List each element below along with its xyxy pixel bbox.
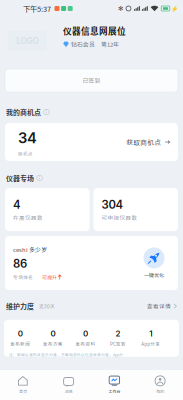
staticText: 可申报仪器数 bbox=[101, 213, 137, 221]
staticText: 2 bbox=[116, 329, 121, 338]
staticText: ceshi 多少岁 bbox=[13, 245, 47, 254]
staticText: 0 bbox=[50, 329, 55, 338]
staticText: 注：新闻以发布并显示为准，方案和资料以栏目收录为准，App分 bbox=[9, 352, 123, 357]
staticText: 专场排名 bbox=[13, 274, 33, 281]
staticText: 工作台 bbox=[108, 388, 120, 394]
staticText: 34 bbox=[18, 129, 37, 147]
staticText: 第12年 bbox=[101, 40, 119, 48]
staticText: App分享 bbox=[141, 340, 160, 347]
staticText: 发布资料 bbox=[75, 340, 95, 347]
button[interactable]: 获取商机点 bbox=[126, 137, 170, 147]
staticText: 1 bbox=[149, 329, 152, 338]
staticText: 我的 bbox=[156, 388, 164, 394]
staticText: 下午5:37 bbox=[23, 3, 51, 14]
staticText: 首页 bbox=[19, 388, 27, 394]
staticText: 0 bbox=[83, 329, 88, 338]
staticText: 维护力度 bbox=[6, 301, 34, 311]
staticText: 304 bbox=[101, 198, 123, 211]
button[interactable]: 我的 bbox=[137, 370, 183, 400]
button[interactable]: 工作台 bbox=[91, 370, 137, 400]
staticText: PC签到 bbox=[110, 340, 126, 347]
staticText: 一键优化 bbox=[144, 271, 164, 279]
staticText: 发布新闻 bbox=[10, 340, 30, 347]
staticText: 仪器专场 bbox=[6, 173, 34, 183]
staticText: 我的商机点 bbox=[6, 107, 41, 117]
staticText: 在展仪器数 bbox=[13, 213, 43, 221]
staticText: 0 bbox=[18, 329, 23, 338]
staticText: ✻ bbox=[118, 5, 123, 12]
staticText: 发布方案 bbox=[43, 340, 63, 347]
staticText: 4 bbox=[13, 198, 21, 211]
staticText: 仪器信息网展位 bbox=[63, 24, 126, 37]
staticText: 近30天 bbox=[39, 303, 55, 310]
staticText: 钻石会员 bbox=[71, 40, 95, 48]
staticText: 已签到 bbox=[82, 76, 100, 85]
button[interactable]: 消息 bbox=[46, 370, 92, 400]
staticText: 查看详情 bbox=[147, 302, 171, 310]
staticText: 获取商机点 bbox=[126, 137, 161, 147]
staticText: LOGO bbox=[16, 36, 38, 46]
staticText: 86 bbox=[13, 257, 27, 270]
button[interactable]: 查看详情 bbox=[147, 302, 177, 310]
staticText: 可提升 bbox=[42, 273, 57, 281]
staticText: ⚡ bbox=[171, 5, 178, 12]
button[interactable]: 首页 bbox=[0, 370, 46, 400]
button[interactable]: 已签到 bbox=[5, 69, 178, 92]
staticText: 商机点 bbox=[18, 150, 33, 157]
staticText: 消息 bbox=[65, 388, 73, 394]
button[interactable]: 一键优化 bbox=[138, 247, 170, 279]
